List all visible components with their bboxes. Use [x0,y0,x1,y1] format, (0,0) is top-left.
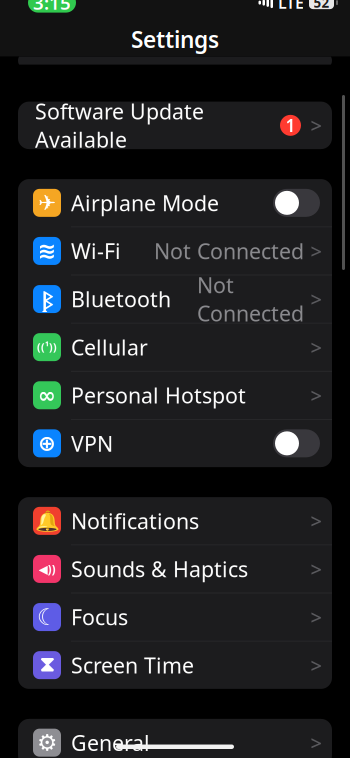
staticText: ᛒ [41,285,52,313]
staticText: > [310,556,321,582]
staticText: > [310,382,321,409]
staticText: Personal Hotspot [71,381,246,409]
staticText: Airplane Mode [71,189,219,217]
staticText: ☾ [37,604,57,630]
staticText: ◀)) [38,561,55,577]
button[interactable]: ᛒ [18,275,332,323]
staticText: 3:15 [33,0,71,15]
staticText: ∞ [38,383,56,407]
staticText: ⧗ [39,655,54,676]
button[interactable]: ☾ [18,593,332,641]
staticText: Screen Time [71,651,194,679]
staticText: ≋ [37,238,56,264]
staticText: > [310,729,321,756]
staticText: Wi-Fi [71,237,121,265]
staticText: > [310,652,321,678]
staticText: 1 [285,114,295,137]
button[interactable]: ∞ [18,371,332,419]
staticText: Settings [131,24,219,54]
staticText: Sounds & Haptics [71,555,248,583]
button[interactable]: ◀)) [18,545,332,593]
button[interactable]: ((¹)) [18,323,332,371]
button[interactable]: 🔔 [18,497,332,545]
button[interactable]: ✈ [18,179,332,227]
staticText: Bluetooth [71,285,171,313]
button[interactable]: ⧗ [18,641,332,689]
staticText: > [310,334,321,360]
button[interactable]: Software Update Available [18,102,332,149]
button[interactable]: ⊕ [18,420,332,467]
staticText: 🔔 [34,509,59,532]
button[interactable]: ≋ [18,227,332,275]
staticText: Notifications [71,507,199,535]
staticText: > [310,286,321,312]
staticText: 52 [313,0,329,11]
staticText: ✈ [38,191,56,215]
button[interactable]: ⚙ [18,719,332,758]
staticText: Software Update Available [35,97,204,154]
staticText: LTE [278,0,304,13]
staticText: > [310,112,321,139]
staticText: > [310,508,321,534]
staticText: > [310,238,321,264]
staticText: ⊕ [38,431,56,455]
staticText: ((¹)) [37,340,57,354]
staticText: Focus [71,603,128,631]
staticText: ⚙ [37,730,57,755]
staticText: Not Connected [197,271,304,327]
staticText: Cellular [71,333,148,361]
staticText: General [71,728,150,757]
staticText: VPN [71,429,113,457]
staticText: > [310,604,321,630]
staticText: Not Connected [154,237,304,265]
